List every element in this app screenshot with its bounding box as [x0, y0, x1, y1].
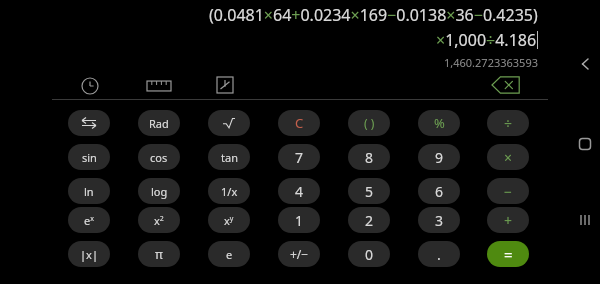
- button[interactable]: 4: [278, 178, 320, 204]
- staticText: ÷: [504, 114, 513, 133]
- staticText: 9: [435, 148, 444, 167]
- staticText: C: [295, 114, 304, 132]
- staticText: −: [504, 182, 513, 201]
- staticText: |x|: [80, 247, 98, 262]
- staticText: e: [226, 247, 233, 262]
- button[interactable]: Unit converter: [147, 78, 171, 94]
- button[interactable]: Recents: [573, 208, 597, 232]
- button[interactable]: +/−: [278, 241, 320, 267]
- button[interactable]: xy: [208, 207, 250, 233]
- button[interactable]: log: [138, 178, 180, 204]
- button[interactable]: Backspace: [492, 76, 520, 94]
- button[interactable]: |x|: [68, 241, 110, 267]
- staticText: %: [434, 114, 445, 132]
- staticText: log: [151, 184, 168, 199]
- staticText: (0.0481×64+0.0234×169−0.0138×36−0.4235): [209, 4, 538, 26]
- button[interactable]: Rad: [138, 110, 180, 136]
- button[interactable]: π: [138, 241, 180, 267]
- staticText: xy: [224, 213, 234, 228]
- staticText: 8: [365, 148, 374, 167]
- staticText: 5: [365, 182, 374, 201]
- button[interactable]: 5: [348, 178, 390, 204]
- button[interactable]: 9: [418, 144, 460, 170]
- button[interactable]: cos: [138, 144, 180, 170]
- button[interactable]: 3: [418, 207, 460, 233]
- staticText: ×1,000÷4.186: [436, 29, 537, 51]
- staticText: .: [437, 245, 441, 264]
- button[interactable]: ex: [68, 207, 110, 233]
- button[interactable]: e: [208, 241, 250, 267]
- staticText: π: [155, 246, 163, 262]
- button[interactable]: 8: [348, 144, 390, 170]
- button[interactable]: .: [418, 241, 460, 267]
- button[interactable]: sin: [68, 144, 110, 170]
- button[interactable]: Square root: [208, 110, 250, 136]
- staticText: Rad: [149, 116, 169, 131]
- button[interactable]: C: [278, 110, 320, 136]
- staticText: +: [504, 211, 513, 230]
- staticText: x2: [154, 213, 164, 228]
- staticText: sin: [82, 150, 97, 165]
- button[interactable]: ln: [68, 178, 110, 204]
- button[interactable]: Swap: [68, 110, 110, 136]
- staticText: ( ): [364, 115, 375, 131]
- button[interactable]: ×: [487, 144, 529, 170]
- staticText: 0: [365, 245, 374, 264]
- button[interactable]: Home: [573, 132, 597, 156]
- staticText: ×: [504, 148, 513, 167]
- button[interactable]: −: [487, 178, 529, 204]
- staticText: 1,460.2723363593: [444, 55, 538, 70]
- staticText: ln: [84, 184, 94, 199]
- staticText: 4: [295, 182, 304, 201]
- button[interactable]: 1/x: [208, 178, 250, 204]
- staticText: 2: [365, 211, 374, 230]
- button[interactable]: 6: [418, 178, 460, 204]
- button[interactable]: History: [80, 76, 100, 96]
- button[interactable]: 2: [348, 207, 390, 233]
- staticText: 7: [295, 148, 304, 167]
- staticText: cos: [150, 150, 168, 165]
- button[interactable]: +: [487, 207, 529, 233]
- staticText: 1: [295, 211, 304, 230]
- staticText: ex: [84, 213, 94, 228]
- staticText: 3: [435, 211, 444, 230]
- button[interactable]: Back: [573, 52, 597, 76]
- button[interactable]: x2: [138, 207, 180, 233]
- staticText: 1/x: [221, 184, 238, 199]
- button[interactable]: tan: [208, 144, 250, 170]
- staticText: =: [504, 244, 513, 264]
- button[interactable]: Graph: [216, 76, 234, 94]
- button[interactable]: =: [487, 241, 529, 267]
- button[interactable]: ÷: [487, 110, 529, 136]
- button[interactable]: 7: [278, 144, 320, 170]
- staticText: 6: [435, 182, 444, 201]
- staticText: tan: [221, 150, 238, 165]
- button[interactable]: %: [418, 110, 460, 136]
- staticText: +/−: [290, 246, 309, 262]
- button[interactable]: 0: [348, 241, 390, 267]
- button[interactable]: ( ): [348, 110, 390, 136]
- button[interactable]: 1: [278, 207, 320, 233]
